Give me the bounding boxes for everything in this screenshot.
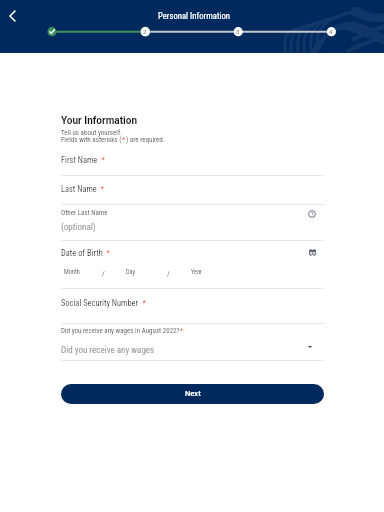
staticText: Year	[191, 268, 202, 275]
button[interactable]: Back	[1, 5, 23, 27]
staticText: Last Name	[61, 184, 97, 194]
button[interactable]: Step 3	[231, 24, 245, 38]
staticText: *	[122, 136, 126, 144]
staticText: First Name	[61, 155, 98, 165]
staticText: *	[180, 327, 184, 335]
staticText: Social Security Number	[61, 298, 139, 308]
staticText: Did you receive any wages in August 2022…	[61, 327, 180, 335]
button[interactable]: Did you receive any wages	[61, 341, 324, 357]
staticText: ?	[311, 211, 314, 217]
staticText: /	[102, 269, 105, 278]
staticText: Did you receive any wages	[61, 345, 155, 356]
staticText: 3	[236, 28, 240, 35]
button[interactable]: Step 4	[324, 24, 338, 38]
staticText: *	[98, 155, 105, 164]
staticText: Tell us about yourself.	[61, 129, 123, 137]
button[interactable]: Next	[61, 384, 324, 404]
staticText: *	[139, 298, 146, 307]
staticText: *	[103, 248, 110, 257]
staticText: 4	[329, 28, 333, 35]
button[interactable]: Help about other last name	[306, 208, 318, 220]
button[interactable]: Step 2	[138, 24, 152, 38]
staticText: (optional)	[61, 222, 96, 233]
staticText: Date of Birth	[61, 248, 103, 258]
staticText: Other Last Name	[61, 209, 108, 217]
staticText: Personal Information	[2, 11, 384, 21]
staticText: Fields with asterisks (	[61, 136, 122, 144]
staticText: *	[97, 184, 104, 193]
staticText: Day	[126, 268, 136, 275]
staticText: ) are required.	[126, 136, 165, 144]
staticText: 2	[143, 28, 147, 35]
button[interactable]: Open calendar	[306, 246, 318, 258]
staticText: Your Information	[61, 115, 137, 127]
staticText: Next	[185, 389, 201, 398]
staticText: /	[167, 269, 170, 278]
staticText: Month	[64, 268, 80, 275]
